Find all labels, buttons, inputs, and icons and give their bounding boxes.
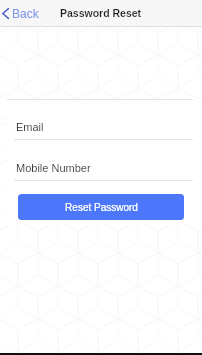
button[interactable]: Mobile Number (0, 162, 202, 181)
staticText: Reset Password (65, 202, 138, 213)
staticText: Email (16, 121, 44, 133)
button[interactable]: Reset Password (18, 194, 184, 220)
staticText: Mobile Number (16, 162, 91, 174)
staticText: Password Reset (60, 7, 142, 19)
staticText: Back (12, 7, 39, 20)
other: Back (2, 8, 9, 19)
button[interactable]: Back (0, 3, 45, 24)
button[interactable]: Email (0, 121, 202, 140)
